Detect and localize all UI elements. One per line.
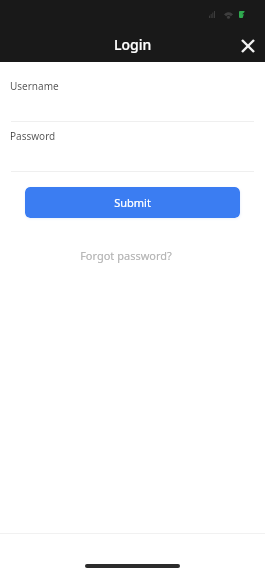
button[interactable]: Forgot password? [72,241,179,267]
button[interactable]: Submit [25,187,240,218]
staticText: Login [114,35,152,54]
staticText: Submit [114,195,151,210]
button[interactable]: Password [0,122,265,171]
button[interactable]: Close [234,32,262,60]
staticText: Forgot password? [80,248,172,263]
staticText: Username [10,79,59,93]
button[interactable]: Username [0,66,265,121]
staticText: Password [10,129,56,143]
